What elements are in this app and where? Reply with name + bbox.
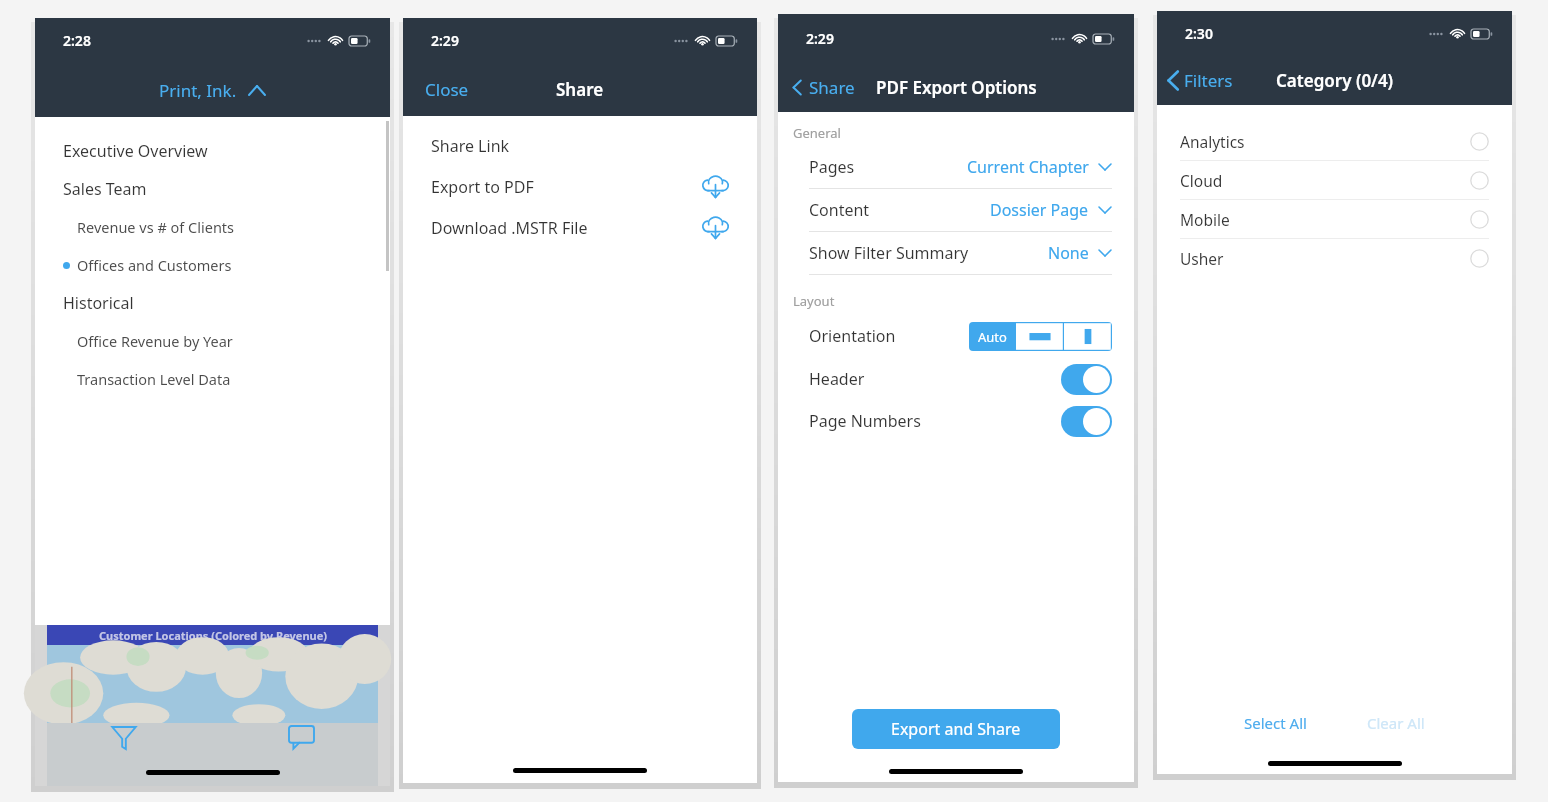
button[interactable]: Share — [792, 62, 855, 112]
button[interactable]: Export to PDF — [431, 166, 729, 207]
staticText: Usher — [1180, 248, 1224, 269]
staticText: Category (0/4) — [1276, 69, 1394, 92]
button[interactable]: Content — [809, 189, 1112, 231]
staticText: Clear All — [1367, 713, 1425, 733]
button[interactable]: Usher — [1180, 239, 1489, 277]
button[interactable]: Cloud — [1180, 161, 1489, 199]
staticText: Current Chapter — [967, 156, 1089, 178]
staticText: 2:28 — [63, 31, 91, 50]
button[interactable]: Analytics — [1180, 122, 1489, 160]
button[interactable]: Landscape — [1016, 322, 1064, 351]
staticText: 2:29 — [806, 29, 834, 48]
button[interactable]: Print, Ink. — [35, 63, 390, 117]
button[interactable] — [1061, 364, 1112, 395]
staticText: 2:30 — [1185, 24, 1213, 43]
staticText: Share Link — [431, 135, 510, 157]
staticText: Share — [556, 78, 604, 101]
button[interactable]: Export and Share — [852, 709, 1060, 749]
button[interactable]: Filter — [35, 716, 212, 758]
staticText: Orientation — [809, 325, 896, 347]
button[interactable]: Sales Team — [35, 170, 390, 208]
staticText: Content — [809, 199, 870, 221]
button[interactable]: Show Filter Summary — [809, 232, 1112, 274]
button[interactable]: Clear All — [1367, 713, 1425, 733]
button[interactable]: Filters — [1167, 55, 1233, 105]
staticText: Export and Share — [891, 718, 1021, 740]
button[interactable]: Office Revenue by Year — [35, 322, 390, 360]
staticText: Dossier Page — [990, 199, 1089, 221]
staticText: Office Revenue by Year — [77, 331, 233, 351]
button[interactable]: Close — [425, 63, 469, 116]
staticText: Export to PDF — [431, 176, 534, 198]
staticText: Page Numbers — [809, 410, 921, 432]
staticText: Transaction Level Data — [77, 369, 231, 389]
staticText: Auto — [978, 328, 1007, 346]
button[interactable]: Historical — [35, 284, 390, 322]
staticText: Show Filter Summary — [809, 242, 969, 264]
button[interactable]: Download .MSTR File — [431, 207, 729, 248]
staticText: Download .MSTR File — [431, 217, 588, 239]
staticText: Print, Ink. — [159, 79, 237, 102]
staticText: Layout — [793, 292, 835, 310]
staticText: 2:29 — [431, 31, 459, 50]
button[interactable]: Executive Overview — [35, 132, 390, 170]
staticText: Share — [809, 76, 855, 99]
staticText: Sales Team — [63, 178, 147, 200]
button[interactable]: Portrait — [1064, 322, 1112, 351]
staticText: None — [1048, 242, 1089, 264]
button[interactable]: Share Link — [431, 125, 729, 166]
staticText: Mobile — [1180, 209, 1230, 230]
staticText: Header — [809, 368, 865, 390]
button[interactable] — [1061, 406, 1112, 437]
staticText: General — [793, 124, 841, 142]
staticText: Analytics — [1180, 131, 1245, 152]
button[interactable]: Transaction Level Data — [35, 360, 390, 398]
staticText: Historical — [63, 292, 134, 314]
staticText: PDF Export Options — [876, 76, 1037, 99]
button[interactable]: Select All — [1244, 713, 1307, 733]
staticText: Filters — [1184, 69, 1233, 92]
button[interactable]: Offices and Customers — [35, 246, 390, 284]
staticText: Cloud — [1180, 170, 1223, 191]
button[interactable]: Mobile — [1180, 200, 1489, 238]
staticText: Select All — [1244, 713, 1307, 733]
staticText: Offices and Customers — [77, 255, 232, 275]
staticText: Revenue vs # of Clients — [77, 217, 235, 237]
button[interactable]: Comments — [212, 716, 390, 758]
staticText: Executive Overview — [63, 140, 208, 162]
button[interactable]: Revenue vs # of Clients — [35, 208, 390, 246]
staticText: Customer Locations (Colored by Revenue) — [99, 628, 327, 643]
staticText: Close — [425, 78, 469, 101]
button[interactable]: Auto — [969, 322, 1016, 351]
staticText: Pages — [809, 156, 855, 178]
button[interactable]: Pages — [809, 146, 1112, 188]
